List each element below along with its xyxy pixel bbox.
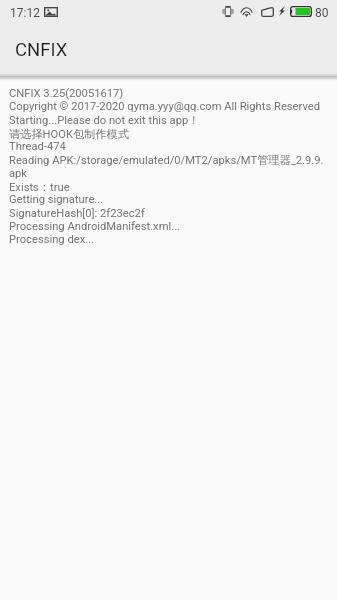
other: Mobile data (261, 7, 274, 17)
staticText: Reading APK:/storage/emulated/0/MT2/apks… (9, 153, 324, 167)
staticText: Starting...Please do not exit this app！ (9, 113, 200, 127)
staticText: Thread-474 (9, 140, 66, 153)
other: Wi-Fi (240, 6, 253, 17)
staticText: CNFIX 3.25(20051617) (9, 87, 124, 100)
other: Screenshot saved (44, 7, 58, 17)
staticText: CNFIX (15, 39, 68, 61)
staticText: Copyright © 2017-2020 qyma.yyy@qq.com Al… (9, 100, 321, 113)
staticText: Exists：true (9, 180, 70, 194)
other: Battery 80 percent (290, 6, 312, 17)
staticText: 17:12 (10, 6, 40, 20)
staticText: SignatureHash[0]: 2f23ec2f (9, 207, 145, 220)
button[interactable]: CNFIX (0, 23, 53, 75)
staticText: Processing AndroidManifest.xml... (9, 220, 181, 233)
staticText: Getting signature... (9, 193, 104, 206)
staticText: 请选择HOOK包制作模式 (9, 127, 129, 141)
other: Charging (279, 6, 285, 16)
staticText: 80 (315, 6, 329, 20)
other: Vibrate mode (222, 6, 234, 17)
staticText: apk (9, 167, 28, 180)
staticText: Processing dex... (9, 233, 95, 246)
